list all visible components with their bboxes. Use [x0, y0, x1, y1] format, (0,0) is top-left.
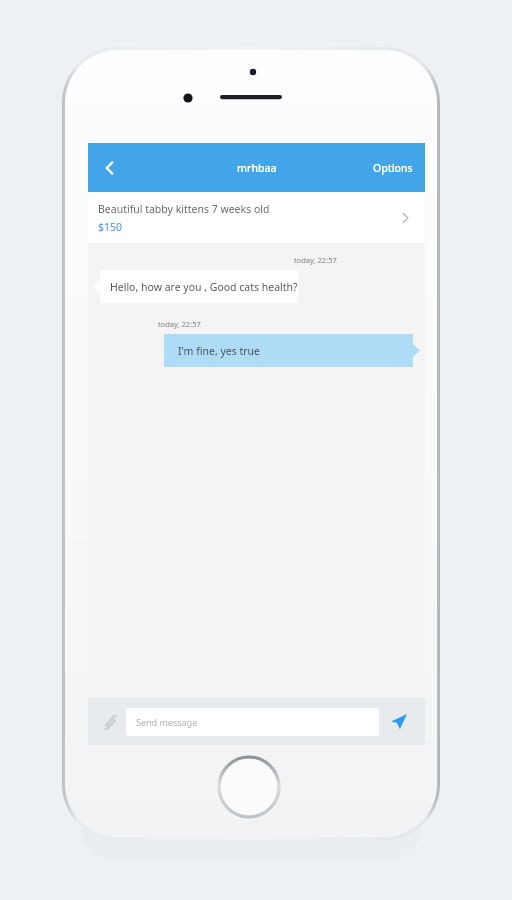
- staticText: Send message: [136, 716, 198, 728]
- staticText: today, 22:57: [158, 319, 201, 329]
- button[interactable]: Beautiful tabby kittens 7 weeks old: [88, 192, 425, 243]
- staticText: mrhbaa: [237, 161, 277, 175]
- other: Home: [62, 757, 440, 837]
- button[interactable]: Send: [379, 698, 417, 745]
- button[interactable]: Back: [88, 143, 132, 192]
- staticText: Hello, how are you , Good cats health?: [110, 280, 298, 294]
- button[interactable]: Send message: [126, 708, 379, 736]
- button[interactable]: Options: [361, 143, 425, 192]
- staticText: Beautiful tabby kittens 7 weeks old: [98, 202, 270, 216]
- button[interactable]: I'm fine, yes true: [164, 334, 420, 367]
- button[interactable]: Attach file: [96, 709, 122, 735]
- button[interactable]: Hello, how are you , Good cats health?: [93, 270, 298, 303]
- staticText: today, 22:57: [294, 255, 337, 265]
- staticText: $150: [98, 220, 123, 234]
- staticText: I'm fine, yes true: [178, 344, 261, 358]
- staticText: Options: [373, 161, 413, 175]
